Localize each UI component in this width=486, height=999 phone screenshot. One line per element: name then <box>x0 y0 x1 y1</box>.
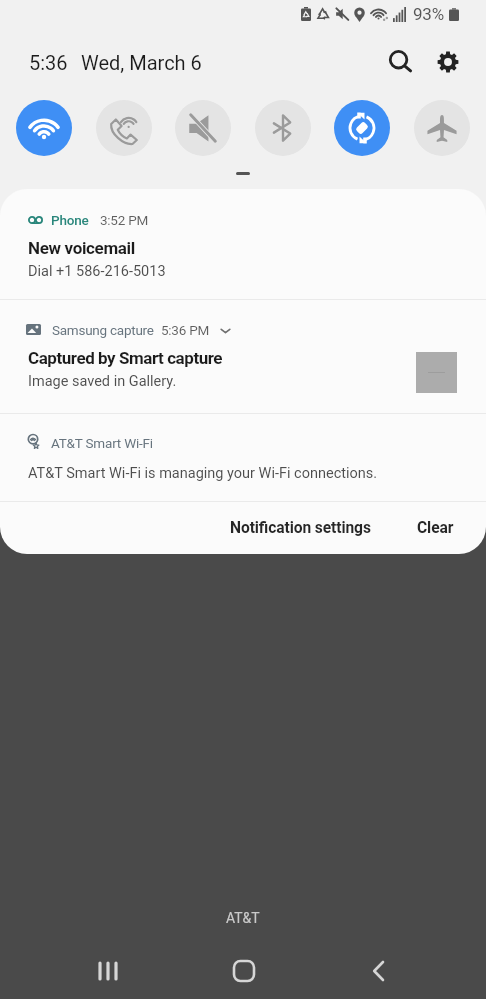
button[interactable]: Notification settings <box>224 509 377 547</box>
staticText: 3:52 PM <box>100 212 148 228</box>
staticText: AT&T Smart Wi-Fi is managing your Wi-Fi … <box>28 465 378 482</box>
staticText: 5:36 PM <box>161 322 209 338</box>
button[interactable]: Clear <box>411 509 460 547</box>
button[interactable]: Mute <box>175 100 231 156</box>
button[interactable]: Bluetooth <box>255 100 311 156</box>
staticText: 93% <box>413 4 444 24</box>
button[interactable]: Samsung capture <box>0 300 486 413</box>
staticText: New voicemail <box>28 238 135 258</box>
staticText: Dial +1 586-216-5013 <box>28 263 166 280</box>
button[interactable]: Wi-Fi <box>16 100 72 156</box>
staticText: Clear <box>417 519 454 537</box>
button[interactable]: Wi-Fi calling <box>96 100 152 156</box>
staticText: Notification settings <box>230 519 371 537</box>
staticText: Wed, March 6 <box>81 51 202 74</box>
button[interactable]: Settings <box>427 41 469 83</box>
button[interactable]: Back <box>311 943 446 999</box>
staticText: AT&T Smart Wi-Fi <box>51 435 153 451</box>
staticText: Samsung capture <box>52 322 154 338</box>
button[interactable]: Home <box>176 943 311 999</box>
button[interactable]: Phone <box>0 189 486 299</box>
staticText: Captured by Smart capture <box>28 348 223 368</box>
staticText: Phone <box>51 212 89 228</box>
button[interactable]: AT&T Smart Wi-Fi <box>0 414 486 501</box>
button[interactable]: Recent apps <box>40 943 176 999</box>
staticText: 5:36 <box>29 51 68 74</box>
button[interactable]: Search <box>379 41 421 83</box>
button[interactable]: Auto rotate <box>334 100 390 156</box>
staticText: AT&T <box>226 910 260 926</box>
button[interactable]: Airplane mode <box>414 100 470 156</box>
staticText: Image saved in Gallery. <box>28 373 177 390</box>
